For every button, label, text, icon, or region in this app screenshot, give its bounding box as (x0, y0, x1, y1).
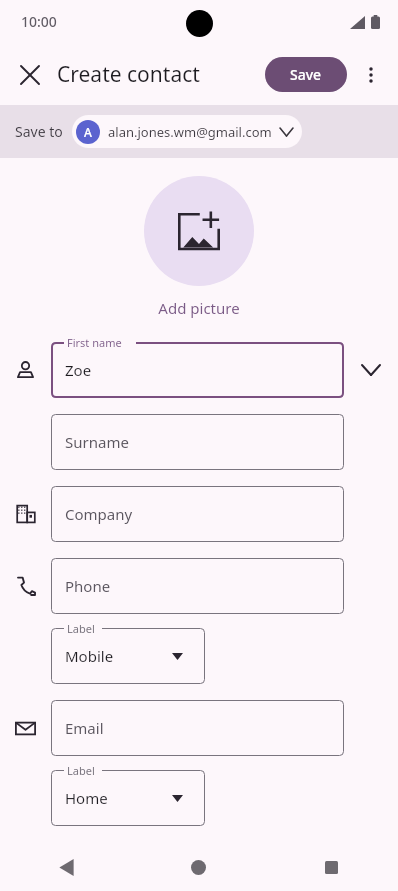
staticText: Create contact (57, 60, 200, 89)
button[interactable]: Phone (51, 558, 344, 614)
staticText: Save to (15, 122, 63, 141)
staticText: Zoe (65, 360, 92, 380)
button[interactable]: First name (51, 342, 344, 398)
button[interactable]: Add picture (158, 298, 240, 318)
button[interactable]: Back (0, 844, 132, 891)
staticText: Company (65, 504, 133, 524)
staticText: Label (67, 763, 95, 778)
button[interactable]: Recent apps (265, 844, 398, 891)
staticText: Save (290, 65, 322, 84)
staticText: First name (67, 335, 122, 350)
button[interactable]: A (72, 115, 302, 148)
staticText: Mobile (65, 646, 114, 666)
button[interactable]: Surname (51, 414, 344, 470)
button[interactable]: Add picture (144, 176, 254, 286)
staticText: Phone (65, 576, 111, 596)
button[interactable]: Close (8, 53, 52, 97)
staticText: Label (67, 621, 95, 636)
button[interactable]: Save (265, 57, 347, 92)
button[interactable]: Label (51, 770, 205, 826)
staticText: A (84, 124, 92, 140)
button[interactable]: Expand name fields (344, 346, 398, 394)
staticText: 10:00 (21, 12, 57, 31)
button[interactable]: Email (51, 700, 344, 756)
button[interactable]: More options (350, 54, 392, 96)
button[interactable]: Home (132, 844, 265, 891)
button[interactable]: Company (51, 486, 344, 542)
staticText: Home (65, 788, 108, 808)
staticText: Email (65, 718, 104, 738)
staticText: Surname (65, 432, 129, 452)
button[interactable]: Label (51, 628, 205, 684)
staticText: alan.jones.wm@gmail.com (108, 123, 272, 141)
